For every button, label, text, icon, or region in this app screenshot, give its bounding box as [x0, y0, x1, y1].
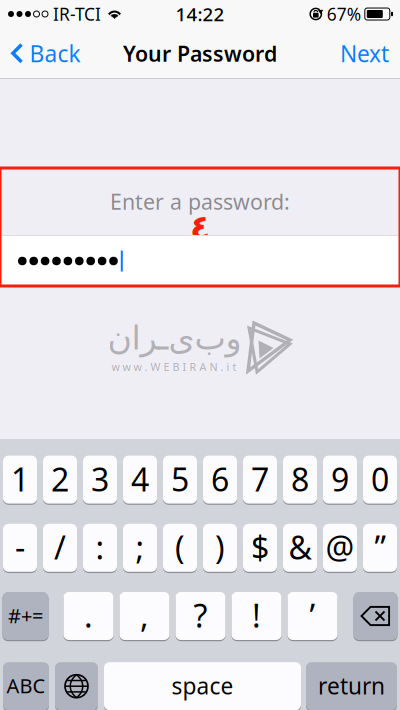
- staticText: 1: [11, 458, 29, 500]
- staticText: ABC: [6, 672, 45, 699]
- button[interactable]: :: [83, 523, 117, 572]
- staticText: @: [325, 526, 354, 568]
- button[interactable]: (: [163, 523, 197, 572]
- staticText: w w w . W E B I R A N . i t: [111, 360, 236, 374]
- button[interactable]: Next: [327, 32, 400, 74]
- staticText: 8: [291, 458, 309, 500]
- staticText: IR-TCI: [53, 2, 101, 25]
- button[interactable]: ”: [363, 523, 397, 572]
- button[interactable]: ): [203, 523, 237, 572]
- button[interactable]: -: [3, 523, 37, 572]
- staticText: 67%: [327, 2, 361, 25]
- button[interactable]: .: [63, 591, 113, 641]
- staticText: return: [318, 670, 385, 701]
- staticText: ,: [140, 594, 149, 637]
- staticText: :: [95, 526, 104, 568]
- staticText: 14:22: [175, 2, 224, 26]
- staticText: 7: [251, 458, 269, 500]
- staticText: 4: [131, 458, 149, 500]
- button[interactable]: ?: [175, 591, 225, 641]
- button[interactable]: 2: [43, 455, 77, 504]
- staticText: ;: [135, 526, 144, 568]
- button[interactable]: ’: [287, 591, 337, 641]
- staticText: Next: [340, 38, 389, 68]
- staticText: ٤: [190, 209, 210, 246]
- button[interactable]: 0: [363, 455, 397, 504]
- staticText: 5: [171, 458, 189, 500]
- button[interactable]: 1: [3, 455, 37, 504]
- button[interactable]: Delete: [353, 592, 397, 640]
- staticText: ”: [374, 526, 385, 568]
- staticText: (: [175, 526, 185, 568]
- button[interactable]: &: [283, 523, 317, 572]
- staticText: ): [215, 526, 225, 568]
- button[interactable]: 6: [203, 455, 237, 504]
- button[interactable]: return: [306, 662, 397, 710]
- staticText: .: [84, 594, 93, 637]
- staticText: space: [171, 670, 233, 701]
- button[interactable]: 3: [83, 455, 117, 504]
- staticText: !: [252, 594, 261, 637]
- button[interactable]: space: [104, 662, 301, 710]
- staticText: 0: [371, 458, 389, 500]
- staticText: ’: [309, 594, 315, 637]
- button[interactable]: 9: [323, 455, 357, 504]
- button[interactable]: !: [231, 591, 281, 641]
- staticText: 3: [91, 458, 109, 500]
- staticText: Your Password: [123, 39, 277, 68]
- staticText: -: [15, 526, 25, 568]
- button[interactable]: 7: [243, 455, 277, 504]
- staticText: $: [251, 526, 269, 568]
- button[interactable]: ;: [123, 523, 157, 572]
- staticText: 9: [331, 458, 349, 500]
- staticText: Enter a password:: [110, 187, 290, 216]
- staticText: Back: [29, 38, 80, 68]
- button[interactable]: /: [43, 523, 77, 572]
- button[interactable]: [0, 236, 400, 286]
- button[interactable]: $: [243, 523, 277, 572]
- button[interactable]: 8: [283, 455, 317, 504]
- staticText: &: [288, 526, 311, 568]
- button[interactable]: ABC: [3, 662, 49, 710]
- staticText: وب‌ی‌ـران: [107, 319, 241, 357]
- staticText: ?: [193, 594, 207, 637]
- staticText: #+=: [8, 602, 43, 629]
- button[interactable]: 5: [163, 455, 197, 504]
- button[interactable]: ,: [119, 591, 169, 641]
- staticText: 2: [51, 458, 69, 500]
- button[interactable]: 4: [123, 455, 157, 504]
- button[interactable]: #+=: [2, 591, 48, 641]
- button[interactable]: Next keyboard: [55, 662, 98, 710]
- staticText: /: [54, 526, 66, 568]
- button[interactable]: @: [323, 523, 357, 572]
- button[interactable]: Back: [0, 32, 91, 74]
- staticText: 6: [211, 458, 229, 500]
